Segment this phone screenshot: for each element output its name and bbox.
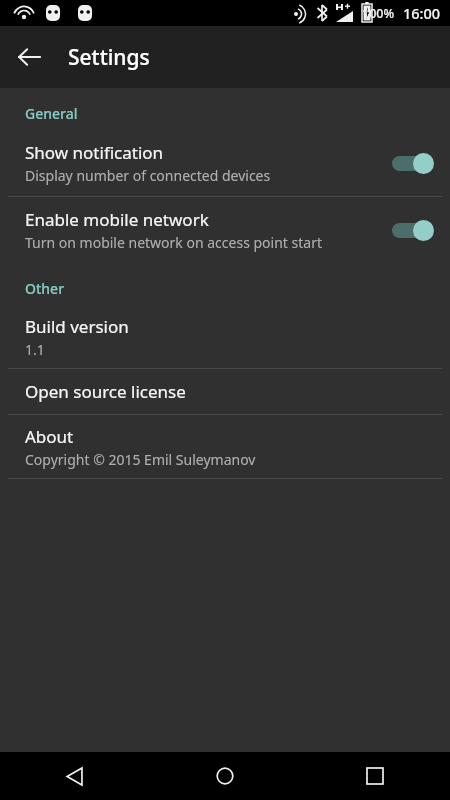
button[interactable]: Open source license xyxy=(0,369,450,414)
staticText: Settings xyxy=(68,43,150,72)
button[interactable]: Show notification xyxy=(0,130,450,196)
button[interactable]: About xyxy=(0,415,450,478)
staticText: Show notification xyxy=(25,141,164,164)
staticText: Copyright © 2015 Emil Suleymanov xyxy=(25,450,256,469)
staticText: Build version xyxy=(25,315,129,338)
button[interactable]: Toggle xyxy=(388,214,436,246)
button[interactable]: Toggle xyxy=(388,147,436,179)
button[interactable]: Back xyxy=(0,752,150,800)
button[interactable]: Enable mobile network xyxy=(0,197,450,263)
staticText: 1.1 xyxy=(25,340,45,359)
staticText: 16:00 xyxy=(403,3,441,23)
staticText: Other xyxy=(25,279,65,298)
button[interactable]: Recent apps xyxy=(300,752,450,800)
staticText: Turn on mobile network on access point s… xyxy=(25,233,322,252)
staticText: Display number of connected devices xyxy=(25,166,271,185)
staticText: 100% xyxy=(362,5,395,22)
staticText: Enable mobile network xyxy=(25,208,209,231)
button[interactable]: Back xyxy=(0,28,58,86)
staticText: Open source license xyxy=(25,380,186,403)
staticText: General xyxy=(25,104,78,123)
button[interactable]: Home xyxy=(150,752,300,800)
button[interactable]: Build version xyxy=(0,305,450,368)
staticText: About xyxy=(25,425,74,448)
